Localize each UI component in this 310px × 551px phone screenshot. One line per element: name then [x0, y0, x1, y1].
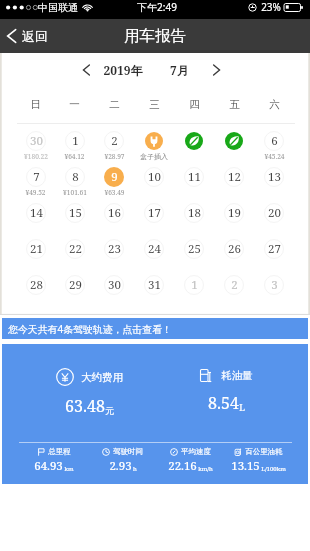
staticText: 9 — [111, 169, 118, 185]
button[interactable]: 1 — [174, 274, 214, 310]
button[interactable]: 30 — [94, 274, 134, 310]
staticText: 四 — [189, 98, 200, 111]
button[interactable]: 返回 — [0, 19, 93, 53]
staticText: 21 — [30, 241, 43, 257]
staticText: 30 — [108, 277, 121, 293]
button[interactable] — [214, 130, 254, 166]
staticText: 大约费用 — [81, 371, 123, 384]
staticText: 13.15 — [231, 458, 260, 474]
button[interactable]: 17 — [134, 202, 174, 238]
button[interactable]: 2 — [94, 130, 134, 166]
staticText: ¥64.12 — [64, 152, 85, 161]
staticText: 64.93 — [34, 458, 63, 474]
button[interactable]: 12 — [214, 166, 254, 202]
staticText: 13 — [268, 169, 281, 185]
button[interactable]: 盒子插入 — [134, 130, 174, 166]
button[interactable]: 百公里油耗 — [224, 447, 292, 474]
staticText: 3 — [271, 277, 278, 293]
button[interactable]: 22 — [55, 238, 94, 274]
button[interactable]: 16 — [94, 202, 134, 238]
staticText: 2 — [111, 133, 118, 149]
button[interactable]: 6 — [254, 130, 294, 166]
staticText: 1 — [72, 133, 79, 149]
staticText: 2019年 — [103, 62, 143, 78]
staticText: 7月 — [170, 62, 189, 78]
staticText: L/100km — [261, 465, 286, 473]
staticText: 23 — [108, 241, 121, 257]
button[interactable]: 10 — [134, 166, 174, 202]
button[interactable]: 1 — [55, 130, 94, 166]
staticText: 19 — [228, 205, 241, 221]
staticText: 8 — [72, 169, 79, 185]
button[interactable]: 您今天共有4条驾驶轨迹，点击查看！ — [2, 318, 308, 339]
staticText: ¥180.22 — [24, 152, 48, 161]
staticText: 耗油量 — [221, 369, 253, 382]
button[interactable]: 25 — [174, 238, 214, 274]
button[interactable]: 19 — [214, 202, 254, 238]
staticText: 17 — [148, 205, 161, 221]
button[interactable]: 大约费用 — [21, 344, 157, 393]
button[interactable]: 14 — [16, 202, 55, 238]
button[interactable]: 26 — [214, 238, 254, 274]
staticText: 平均速度 — [181, 447, 211, 456]
button[interactable]: 27 — [254, 238, 294, 274]
staticText: km — [64, 465, 74, 473]
button[interactable]: 30 — [16, 130, 55, 166]
staticText: 2 — [231, 277, 238, 293]
staticText: 11 — [188, 169, 201, 185]
button[interactable]: 驾驶时间 — [88, 447, 156, 474]
staticText: 16 — [108, 205, 121, 221]
staticText: 25 — [188, 241, 201, 257]
button[interactable]: 21 — [16, 238, 55, 274]
button[interactable]: 20 — [254, 202, 294, 238]
button[interactable]: 24 — [134, 238, 174, 274]
staticText: 六 — [269, 98, 280, 111]
button[interactable]: 23 — [94, 238, 134, 274]
staticText: 百公里油耗 — [245, 447, 283, 456]
button[interactable]: 平均速度 — [156, 447, 224, 474]
staticText: 元 — [105, 405, 114, 416]
button[interactable]: 耗油量 — [157, 344, 294, 390]
button[interactable]: 29 — [55, 274, 94, 310]
staticText: 63.48 — [65, 395, 105, 417]
staticText: 用车报告 — [124, 26, 186, 46]
staticText: h — [133, 465, 137, 473]
staticText: 22.16 — [168, 458, 197, 474]
button[interactable]: 3 — [254, 274, 294, 310]
button[interactable]: 9 — [94, 166, 134, 202]
staticText: 27 — [268, 241, 281, 257]
staticText: 二 — [109, 98, 120, 111]
staticText: 五 — [229, 98, 240, 111]
button[interactable]: 28 — [16, 274, 55, 310]
button[interactable]: 7 — [16, 166, 55, 202]
button[interactable]: 11 — [174, 166, 214, 202]
staticText: 14 — [30, 205, 43, 221]
staticText: 中国联通 — [38, 1, 78, 14]
button[interactable]: 8 — [55, 166, 94, 202]
staticText: 8.54 — [208, 392, 239, 414]
button[interactable]: 31 — [134, 274, 174, 310]
button[interactable]: Next month — [204, 58, 228, 82]
button[interactable]: 13 — [254, 166, 294, 202]
staticText: 28 — [30, 277, 43, 293]
staticText: 29 — [69, 277, 82, 293]
button[interactable]: 2 — [214, 274, 254, 310]
staticText: 返回 — [22, 28, 48, 44]
staticText: 2.93 — [109, 458, 132, 474]
staticText: 22 — [69, 241, 82, 257]
staticText: 10 — [148, 169, 161, 185]
button[interactable]: 18 — [174, 202, 214, 238]
staticText: 26 — [228, 241, 241, 257]
staticText: ¥49.52 — [25, 188, 46, 197]
staticText: 驾驶时间 — [113, 447, 143, 456]
staticText: 20 — [268, 205, 281, 221]
staticText: 盒子插入 — [140, 152, 168, 161]
staticText: 24 — [148, 241, 161, 257]
button[interactable]: 15 — [55, 202, 94, 238]
button[interactable]: 总里程 — [19, 447, 88, 474]
staticText: 30 — [30, 133, 43, 149]
staticText: 总里程 — [48, 447, 71, 456]
button[interactable]: Previous month — [74, 58, 98, 82]
button[interactable] — [174, 130, 214, 166]
staticText: ¥63.49 — [104, 188, 125, 197]
